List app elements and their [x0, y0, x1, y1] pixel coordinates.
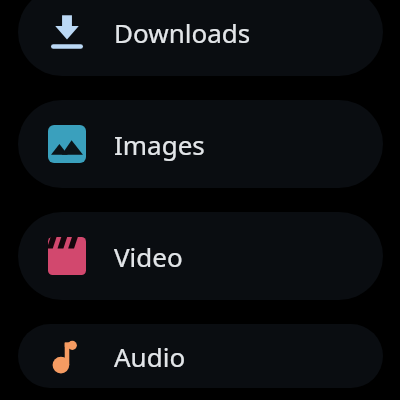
staticText: Images [114, 127, 205, 162]
other: Downloads [48, 13, 86, 51]
button[interactable]: Images [18, 100, 383, 188]
other: Audio [48, 337, 86, 375]
staticText: Video [114, 239, 183, 274]
other: Images [48, 125, 86, 163]
button[interactable]: Downloads [18, 0, 383, 76]
button[interactable]: Video [18, 212, 383, 300]
staticText: Audio [114, 339, 186, 374]
other: Video [48, 237, 86, 275]
staticText: Downloads [114, 15, 251, 50]
button[interactable]: Audio [18, 324, 383, 388]
